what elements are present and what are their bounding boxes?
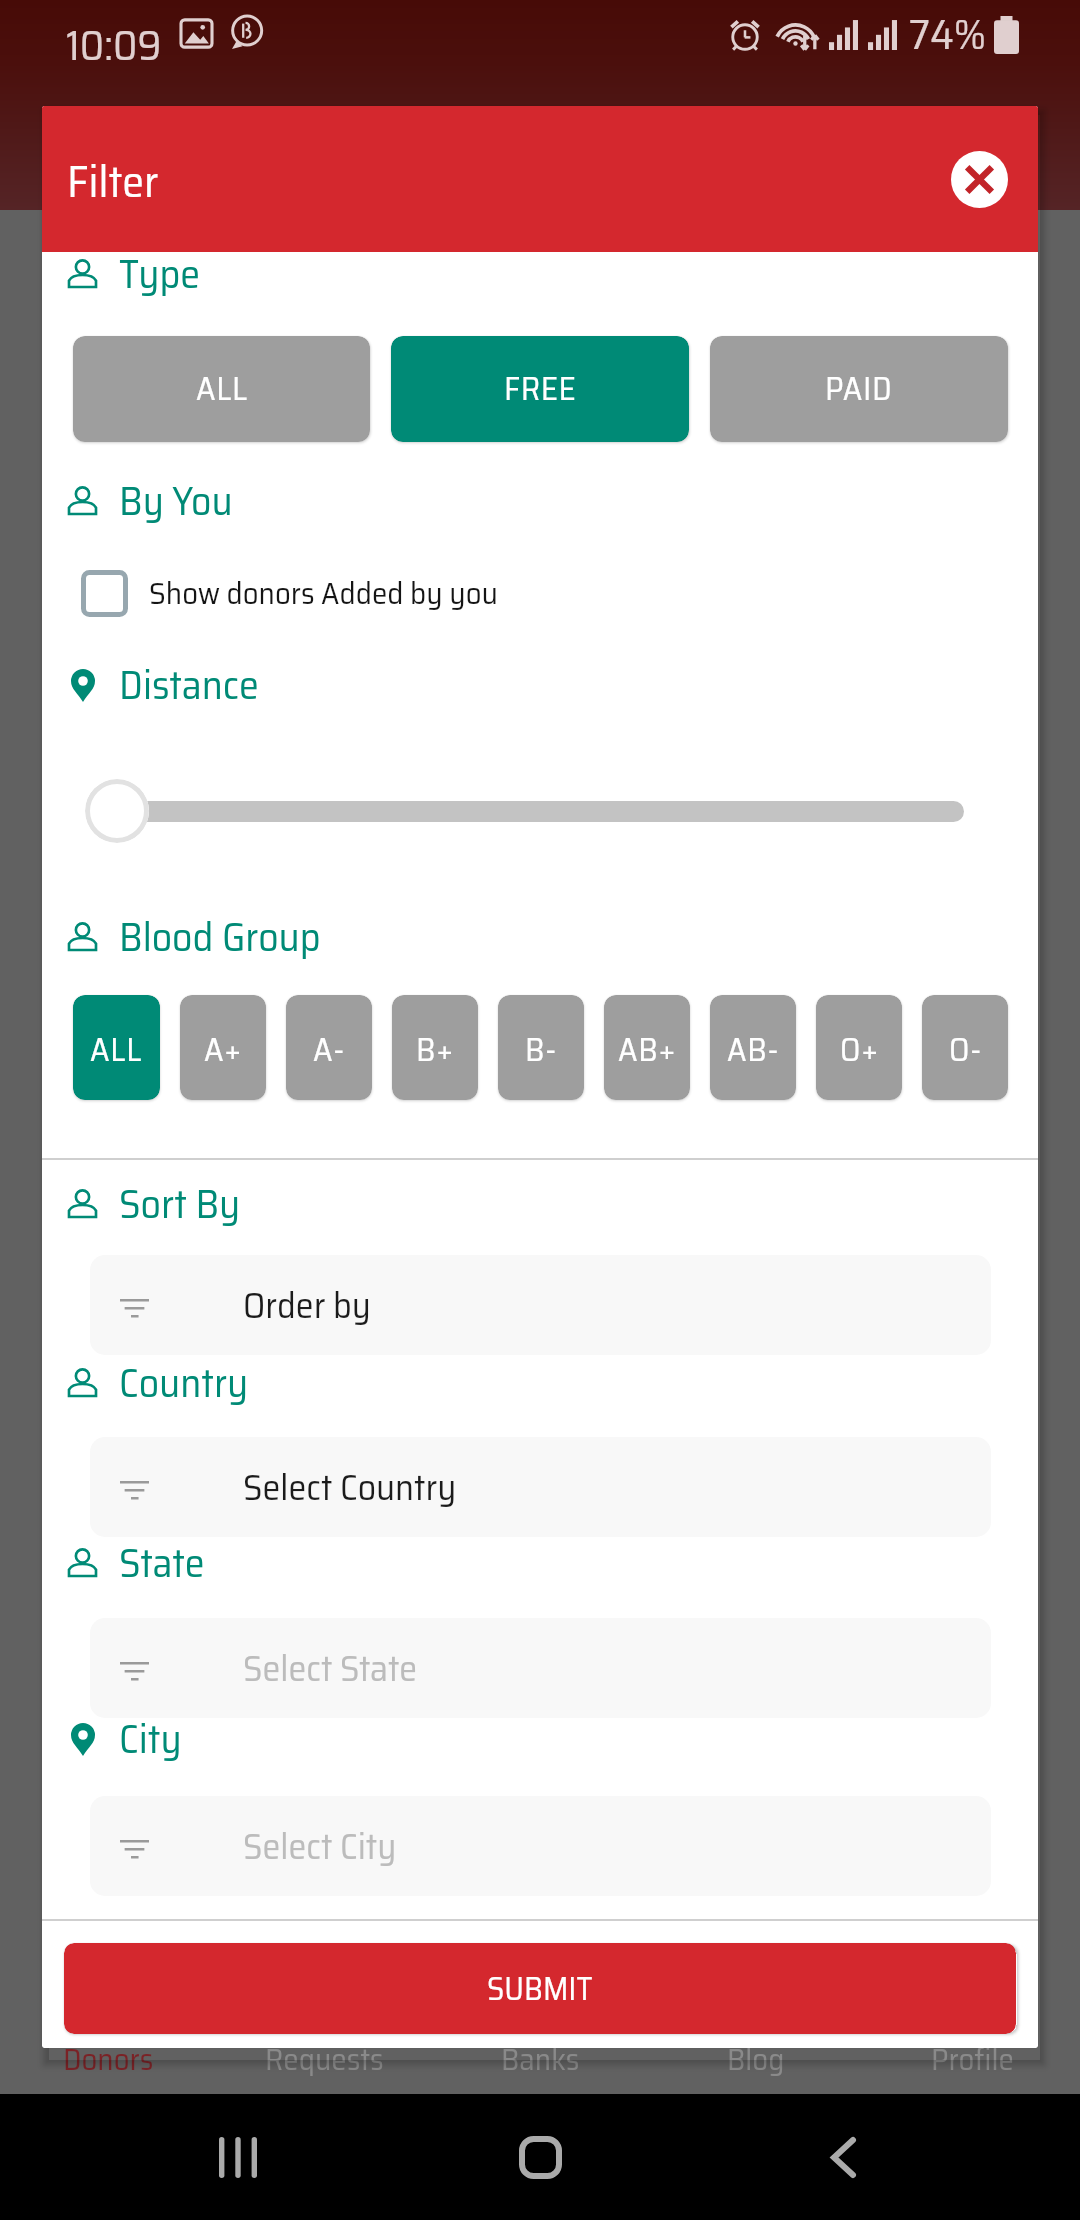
button[interactable]: Select City [90,1796,991,1896]
button[interactable]: Close [951,151,1008,208]
staticText: Select Country [243,1459,457,1516]
button[interactable]: Back [785,2094,901,2220]
staticText: Donors [63,2035,154,2084]
button[interactable]: O+ [816,995,902,1100]
button[interactable]: Blog [648,2035,864,2087]
staticText: City [119,1708,182,1771]
staticText: A+ [204,1024,242,1076]
button[interactable]: Banks [432,2035,648,2087]
button[interactable]: PAID [710,336,1008,442]
button[interactable]: ALL [73,995,160,1100]
button[interactable]: O- [922,995,1008,1100]
button[interactable]: B+ [392,995,478,1100]
staticText: Sort By [119,1173,241,1236]
staticText: Country [119,1352,249,1415]
staticText: Blog [727,2035,785,2084]
staticText: By You [119,470,233,533]
button[interactable]: Select Country [90,1437,991,1537]
staticText: Requests [265,2035,384,2084]
button[interactable]: FREE [391,336,689,442]
staticText: Banks [501,2035,580,2084]
staticText: AB- [727,1024,780,1076]
button[interactable]: Distance slider [85,779,149,843]
staticText: O- [949,1024,982,1076]
staticText: Profile [931,2035,1014,2084]
staticText: B- [525,1024,557,1076]
staticText: O+ [840,1024,879,1076]
button[interactable]: Home [482,2094,598,2220]
staticText: SUBMIT [487,1964,593,2014]
button[interactable]: AB+ [604,995,690,1100]
staticText: AB+ [618,1024,677,1076]
staticText: Distance [119,654,259,717]
staticText: Select State [243,1640,418,1697]
button[interactable]: B- [498,995,584,1100]
button[interactable]: Select State [90,1618,991,1718]
button[interactable]: Requests [216,2035,432,2087]
staticText: ALL [196,363,248,415]
button[interactable]: AB- [710,995,796,1100]
staticText: PAID [825,363,893,415]
button[interactable]: A- [286,995,372,1100]
staticText: State [119,1532,205,1595]
staticText: FREE [504,363,577,415]
button[interactable]: Show donors Added by you [81,570,128,617]
button[interactable]: Donors [0,2035,216,2087]
staticText: Show donors Added by you [149,569,498,618]
staticText: ALL [90,1024,143,1076]
staticText: Filter [67,147,159,216]
staticText: 10:09 [66,12,162,78]
staticText: Blood Group [119,906,321,969]
staticText: Type [119,243,201,306]
button[interactable]: ALL [73,336,370,442]
staticText: B+ [416,1024,454,1076]
button[interactable]: Order by [90,1255,991,1355]
button[interactable]: A+ [180,995,266,1100]
staticText: A- [313,1024,345,1076]
button[interactable]: SUBMIT [64,1943,1016,2034]
staticText: Select City [243,1818,397,1875]
staticText: Order by [243,1277,371,1334]
button[interactable]: Profile [864,2035,1080,2087]
staticText: 74% [909,0,986,68]
button[interactable]: Recents [180,2094,296,2220]
